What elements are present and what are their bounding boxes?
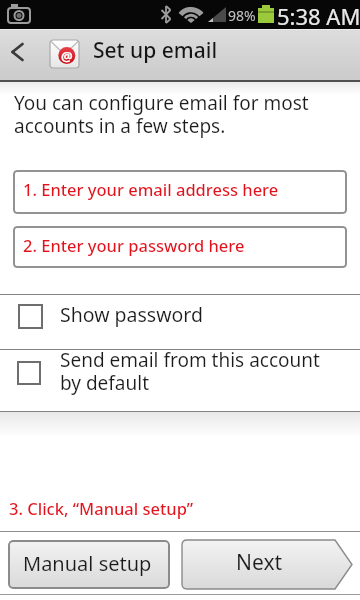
staticText: Send email from this account by default [60,347,320,396]
staticText: @ [61,47,73,65]
staticText: 3. Click, “Manual setup” [9,497,194,519]
button[interactable]: Send email from this account by default [0,350,360,411]
button[interactable] [4,38,34,72]
staticText: 5:38 AM [277,1,360,30]
button[interactable]: Manual setup [8,540,170,589]
button[interactable]: 2. Enter your password here [13,226,347,268]
staticText: 2. Enter your password here [23,234,245,256]
staticText: 98% [228,6,256,25]
staticText: You can configure email for most account… [14,90,309,139]
button[interactable]: Show password [0,295,360,349]
staticText: Manual setup [23,550,152,577]
staticText: Show password [60,301,203,328]
staticText: Set up email [93,36,218,65]
button[interactable]: 1. Enter your email address here [13,170,347,214]
button[interactable]: Next [182,540,352,589]
staticText: 1. Enter your email address here [23,178,279,200]
staticText: Next [236,548,283,577]
